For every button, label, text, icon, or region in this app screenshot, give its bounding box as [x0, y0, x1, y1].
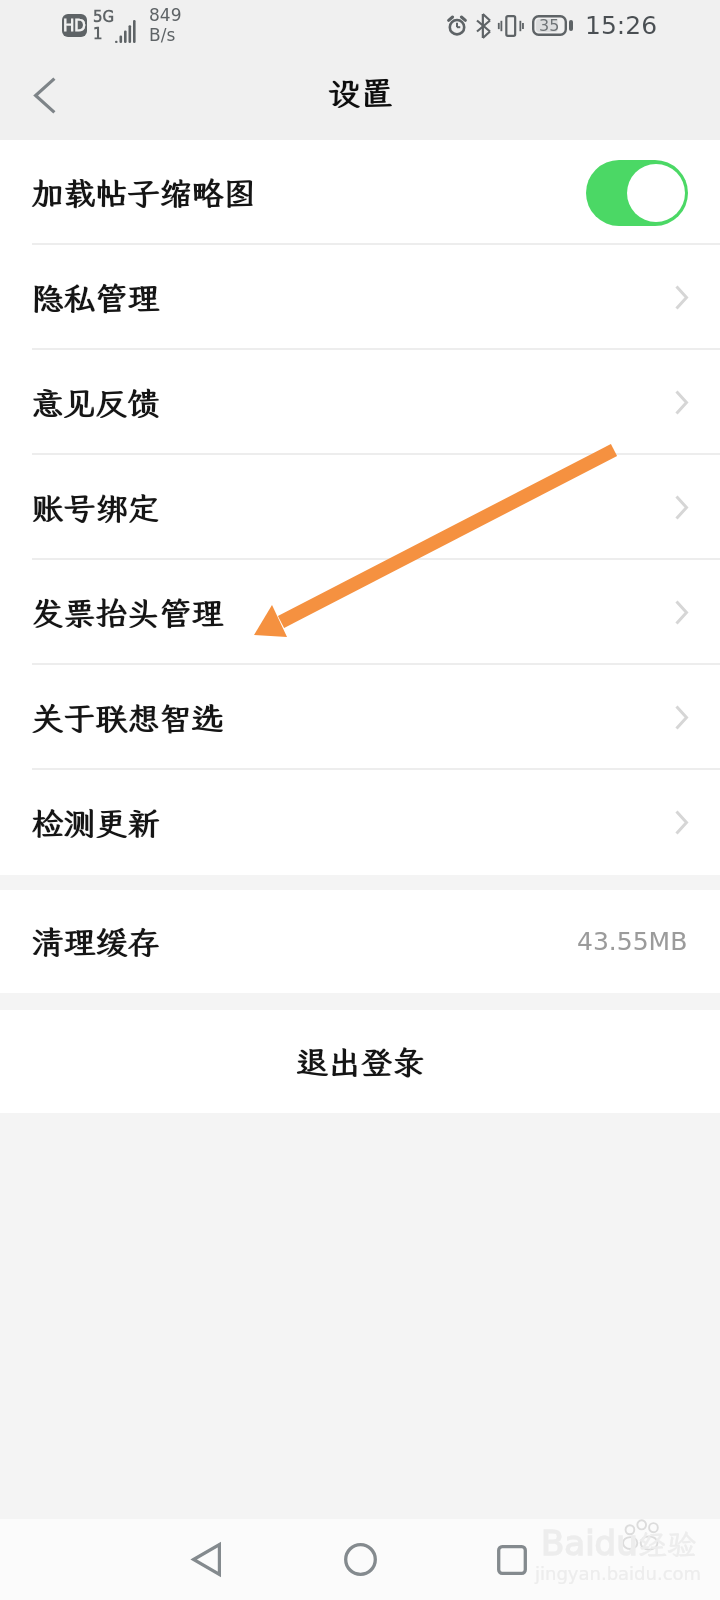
staticText: 意见反馈 — [32, 382, 161, 424]
button[interactable]: Home — [300, 1519, 420, 1600]
staticText: 发票抬头管理 — [31, 592, 224, 634]
button[interactable]: 账号绑定 — [0, 455, 720, 560]
staticText: 43.55MB — [577, 927, 688, 956]
staticText: 意见反馈 — [31, 382, 160, 424]
staticText: jingyan.baidu.com — [535, 1563, 702, 1584]
button[interactable]: 发票抬头管理 — [0, 560, 720, 665]
button[interactable]: 退出登录 — [0, 1010, 720, 1113]
staticText: 15:26 — [585, 11, 658, 40]
staticText: 检测更新 — [31, 802, 160, 844]
staticText: 检测更新 — [32, 802, 161, 844]
staticText: 1 — [93, 25, 103, 42]
button[interactable]: 检测更新 — [0, 770, 720, 875]
staticText: 关于联想智选 — [31, 697, 224, 739]
staticText: 账号绑定 — [31, 487, 160, 529]
button[interactable]: 隐私管理 — [0, 245, 720, 350]
staticText: 隐私管理 — [32, 277, 161, 319]
staticText: 设置 — [328, 71, 394, 114]
staticText: 账号绑定 — [32, 487, 161, 529]
staticText: 清理缓存 — [32, 921, 161, 963]
staticText: 5G — [93, 8, 115, 25]
staticText: B/s — [149, 25, 176, 45]
staticText: 35 — [539, 16, 560, 35]
staticText: 关于联想智选 — [32, 697, 225, 739]
staticText: 经验 — [638, 1525, 697, 1563]
staticText: 隐私管理 — [31, 277, 160, 319]
staticText: 清理缓存 — [31, 921, 160, 963]
staticText: Baidu — [541, 1523, 638, 1563]
button[interactable]: 加载帖子缩略图 — [0, 140, 720, 245]
staticText: 849 — [149, 5, 182, 25]
button[interactable]: Back — [146, 1519, 266, 1600]
staticText: 设置 — [327, 71, 393, 114]
button[interactable]: Back — [0, 50, 90, 140]
staticText: 退出登录 — [296, 1041, 425, 1083]
staticText: 退出登录 — [297, 1041, 426, 1083]
staticText: 发票抬头管理 — [32, 592, 225, 634]
button[interactable]: 关于联想智选 — [0, 665, 720, 770]
button[interactable]: 意见反馈 — [0, 350, 720, 455]
staticText: 加载帖子缩略图 — [31, 172, 256, 214]
button[interactable]: 清理缓存 — [0, 890, 720, 993]
staticText: HD — [63, 17, 86, 34]
button[interactable]: Recents — [452, 1519, 572, 1600]
staticText: 加载帖子缩略图 — [32, 172, 257, 214]
